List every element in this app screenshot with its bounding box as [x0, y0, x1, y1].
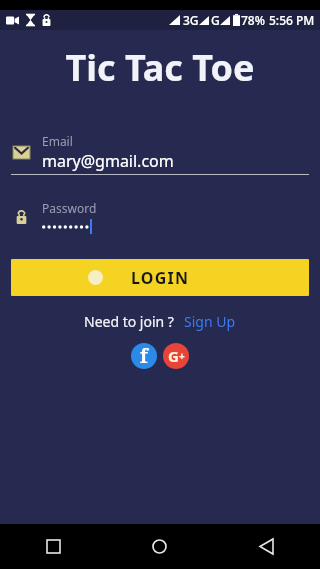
staticText: LOGIN	[131, 267, 190, 289]
staticText: +	[179, 349, 185, 363]
staticText: Email	[42, 133, 73, 149]
staticText: Sign Up	[184, 312, 236, 331]
staticText: Tic Tac Toe	[0, 43, 320, 92]
staticText: Need to join ?	[84, 312, 174, 331]
button[interactable]: Home	[106, 524, 213, 569]
button[interactable]: Sign Up	[174, 312, 236, 331]
button[interactable]: Sign in with Facebook	[131, 343, 157, 369]
staticText: G	[168, 346, 179, 366]
staticText: f	[140, 343, 148, 369]
staticText: mary@gmail.com	[42, 150, 174, 172]
staticText: 78%	[241, 12, 265, 28]
button[interactable]: Sign in with Google	[163, 343, 189, 369]
staticText: G	[211, 12, 220, 28]
button[interactable]: Password	[0, 197, 320, 237]
staticText: 3G	[183, 12, 199, 28]
staticText: 5:56 PM	[269, 12, 315, 28]
button[interactable]: Email	[0, 131, 320, 174]
button[interactable]: Back	[213, 524, 320, 569]
button[interactable]: Recent apps	[0, 524, 106, 569]
staticText: Password	[42, 200, 97, 216]
button[interactable]: LOGIN	[11, 259, 309, 296]
